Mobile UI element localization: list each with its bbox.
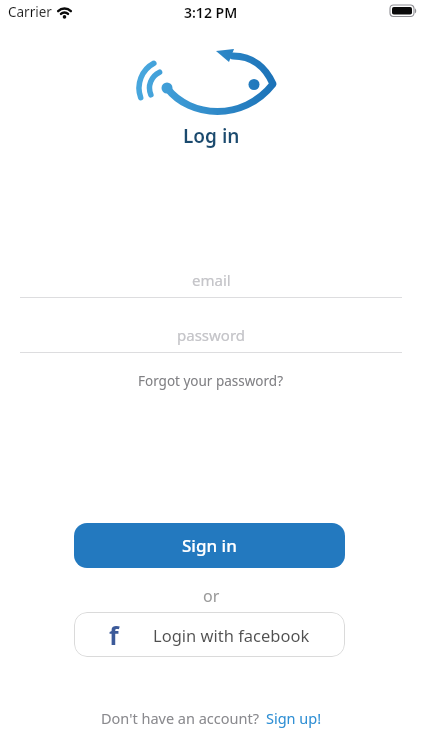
button[interactable]: Sign up!	[266, 708, 322, 728]
staticText: 3:12 PM	[184, 3, 238, 22]
staticText: email	[192, 270, 231, 290]
button[interactable]: Forgot your password?	[138, 372, 284, 390]
staticText: Carrier	[8, 3, 52, 20]
staticText: Login with facebook	[153, 624, 310, 646]
button[interactable]: f	[74, 612, 345, 657]
staticText: Don't have an account?	[101, 708, 259, 728]
staticText: Forgot your password?	[138, 372, 284, 390]
button[interactable]: Sign in	[74, 523, 345, 568]
button[interactable]: password	[20, 317, 402, 353]
staticText: or	[203, 585, 220, 607]
staticText: Log in	[183, 123, 240, 149]
staticText: f	[109, 618, 119, 652]
staticText: password	[177, 325, 245, 345]
staticText: Sign in	[182, 534, 237, 557]
staticText: Sign up!	[266, 708, 322, 728]
button[interactable]: email	[20, 262, 402, 298]
